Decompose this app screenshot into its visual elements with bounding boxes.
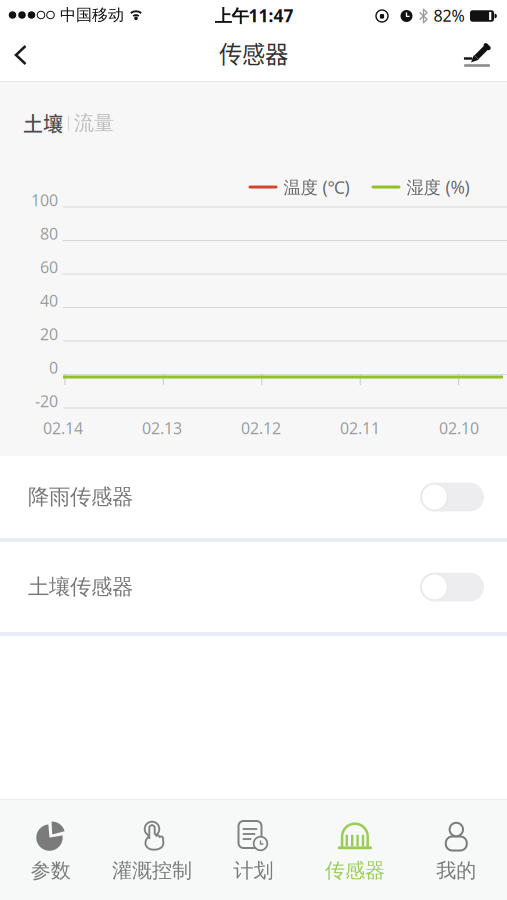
- staticText: 土壤: [23, 108, 63, 137]
- button[interactable]: [420, 572, 484, 601]
- staticText: 计划: [233, 858, 273, 883]
- staticText: 湿度 (%): [406, 175, 469, 198]
- button[interactable]: 计划: [203, 799, 304, 900]
- staticText: 上午11:47: [214, 4, 293, 27]
- staticText: 传感器: [325, 858, 385, 883]
- staticText: 02.12: [241, 417, 281, 439]
- staticText: -20: [35, 390, 58, 412]
- button[interactable]: 我的: [406, 799, 507, 900]
- staticText: 传感器: [219, 36, 288, 70]
- button[interactable]: [420, 482, 484, 511]
- staticText: 土壤传感器: [28, 574, 133, 600]
- staticText: 02.14: [43, 417, 83, 439]
- staticText: 20: [40, 323, 58, 345]
- staticText: 02.11: [340, 417, 380, 439]
- staticText: 温度 (℃): [283, 175, 349, 198]
- staticText: 灌溉控制: [112, 858, 192, 883]
- button[interactable]: [0, 30, 50, 80]
- button[interactable]: 土壤: [17, 102, 69, 143]
- staticText: 60: [40, 256, 58, 278]
- button[interactable]: [447, 30, 507, 80]
- button[interactable]: 灌溉控制: [101, 799, 203, 900]
- staticText: 降雨传感器: [28, 484, 133, 510]
- staticText: 82%: [433, 5, 464, 26]
- staticText: 100: [31, 189, 58, 211]
- staticText: 流量: [74, 111, 114, 135]
- staticText: 0: [49, 357, 58, 378]
- staticText: 02.10: [439, 417, 479, 439]
- staticText: 我的: [436, 858, 476, 883]
- staticText: 参数: [31, 858, 71, 883]
- button[interactable]: 流量: [68, 105, 120, 141]
- staticText: 40: [40, 290, 58, 311]
- staticText: 80: [40, 223, 58, 244]
- button[interactable]: 传感器: [304, 799, 406, 900]
- staticText: 中国移动: [60, 5, 124, 25]
- staticText: 02.13: [142, 417, 182, 439]
- button[interactable]: 参数: [0, 799, 101, 900]
